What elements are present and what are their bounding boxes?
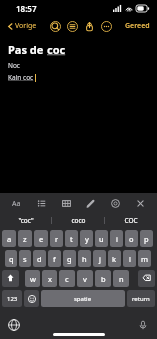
- staticText: h: [82, 254, 87, 264]
- button[interactable]: Shift: [2, 270, 19, 287]
- staticText: d: [37, 254, 42, 264]
- staticText: y: [85, 234, 89, 244]
- button[interactable]: z: [18, 230, 32, 247]
- button[interactable]: Vorige: [5, 21, 39, 31]
- staticText: Kaln coc: [8, 73, 34, 82]
- staticText: u: [99, 234, 104, 244]
- button[interactable]: e: [34, 230, 48, 247]
- staticText: x: [48, 274, 52, 284]
- button[interactable]: "coc": [0, 213, 51, 228]
- button[interactable]: Dicteren: [137, 319, 149, 331]
- button[interactable]: Meer: [101, 21, 112, 32]
- staticText: c: [65, 274, 69, 284]
- staticText: b: [101, 274, 106, 284]
- button[interactable]: q: [5, 250, 17, 267]
- staticText: m: [141, 254, 149, 264]
- button[interactable]: Gereed: [123, 21, 152, 31]
- button[interactable]: Markering: [84, 197, 97, 210]
- button[interactable]: Deel: [84, 21, 95, 32]
- staticText: f: [53, 254, 56, 264]
- staticText: n: [119, 274, 124, 284]
- button[interactable]: b: [95, 270, 111, 287]
- button[interactable]: a: [2, 230, 16, 247]
- staticText: 123: [7, 295, 18, 303]
- button[interactable]: Camera: [109, 197, 122, 210]
- button[interactable]: n: [113, 270, 129, 287]
- button[interactable]: Wissel toetsenbord: [8, 319, 20, 331]
- staticText: coco: [71, 216, 86, 225]
- staticText: v: [83, 274, 87, 284]
- staticText: o: [129, 234, 134, 244]
- staticText: t: [70, 234, 73, 244]
- staticText: Noc: [8, 61, 20, 70]
- button[interactable]: k: [108, 250, 121, 267]
- button[interactable]: Emoji: [24, 290, 39, 307]
- button[interactable]: 123: [2, 290, 22, 307]
- button[interactable]: l: [123, 250, 136, 267]
- staticText: w: [30, 274, 36, 284]
- button[interactable]: Zoeken: [50, 21, 61, 32]
- button[interactable]: r: [50, 230, 63, 247]
- button[interactable]: c: [59, 270, 75, 287]
- button[interactable]: g: [63, 250, 76, 267]
- button[interactable]: t: [65, 230, 78, 247]
- staticText: Vorige: [15, 21, 37, 31]
- staticText: Pas de: [8, 42, 47, 57]
- button[interactable]: u: [95, 230, 108, 247]
- button[interactable]: return: [127, 290, 155, 307]
- button[interactable]: spatie: [41, 290, 125, 307]
- button[interactable]: s: [19, 250, 31, 267]
- button[interactable]: m: [138, 250, 151, 267]
- staticText: k: [112, 254, 117, 264]
- button[interactable]: j: [93, 250, 106, 267]
- staticText: s: [23, 254, 27, 264]
- button[interactable]: Controlelijst: [35, 197, 48, 210]
- staticText: a: [7, 234, 12, 244]
- staticText: l: [129, 254, 131, 264]
- staticText: g: [67, 254, 72, 264]
- button[interactable]: w: [25, 270, 40, 287]
- staticText: 18:57: [16, 3, 37, 14]
- staticText: coc: [47, 42, 66, 57]
- button[interactable]: h: [78, 250, 91, 267]
- staticText: spatie: [74, 295, 92, 303]
- button[interactable]: Tekststijl: [10, 197, 23, 210]
- button[interactable]: p: [140, 230, 153, 247]
- button[interactable]: Sluit toetsenbord: [134, 197, 147, 210]
- button[interactable]: Tabel: [60, 197, 73, 210]
- staticText: Gereed: [125, 21, 150, 31]
- staticText: COC: [124, 216, 138, 225]
- button[interactable]: f: [48, 250, 61, 267]
- staticText: q: [9, 254, 14, 264]
- button[interactable]: COC: [105, 213, 157, 228]
- staticText: z: [23, 234, 27, 244]
- button[interactable]: Lijst: [67, 21, 78, 32]
- staticText: "coc": [18, 216, 34, 225]
- staticText: j: [99, 254, 101, 264]
- button[interactable]: i: [110, 230, 123, 247]
- button[interactable]: v: [77, 270, 93, 287]
- button[interactable]: Wis: [138, 270, 155, 287]
- button[interactable]: o: [125, 230, 138, 247]
- button[interactable]: y: [80, 230, 93, 247]
- staticText: r: [55, 234, 59, 244]
- staticText: return: [132, 295, 150, 303]
- button[interactable]: d: [33, 250, 46, 267]
- staticText: e: [39, 234, 44, 244]
- staticText: p: [144, 234, 149, 244]
- staticText: Aa: [12, 199, 21, 209]
- staticText: i: [116, 234, 118, 244]
- button[interactable]: coco: [52, 213, 104, 228]
- button[interactable]: x: [42, 270, 57, 287]
